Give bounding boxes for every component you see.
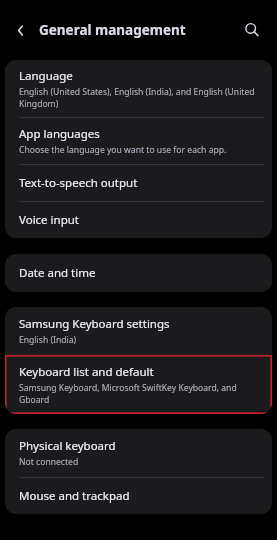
button[interactable]: Language [5,60,272,117]
staticText: Voice input [19,212,79,228]
button[interactable]: App languages [5,118,272,164]
staticText: English (India) [19,334,77,346]
staticText: Samsung Keyboard settings [19,316,170,332]
staticText: App languages [19,126,100,142]
button[interactable]: Samsung Keyboard settings [5,307,272,355]
staticText: Choose the language you want to use for … [19,144,227,156]
button[interactable]: Voice input [5,202,272,238]
staticText: English (United States), English (India)… [19,86,260,109]
staticText: Date and time [19,265,96,281]
staticText: Physical keyboard [19,438,116,454]
staticText: Keyboard list and default [19,364,154,380]
staticText: Samsung Keyboard, Microsoft SwiftKey Key… [19,382,260,405]
button[interactable]: Back [8,18,32,42]
button[interactable]: Date and time [5,254,272,292]
button[interactable]: Text-to-speech output [5,165,272,201]
staticText: Mouse and trackpad [19,488,130,504]
button[interactable]: Mouse and trackpad [5,478,272,514]
button[interactable]: Keyboard list and default [5,355,272,414]
staticText: Text-to-speech output [19,175,138,191]
staticText: Language [19,68,73,84]
button[interactable]: Physical keyboard [5,429,272,477]
button[interactable]: Search [238,16,266,44]
staticText: General management [39,21,238,39]
staticText: Not connected [19,456,79,468]
